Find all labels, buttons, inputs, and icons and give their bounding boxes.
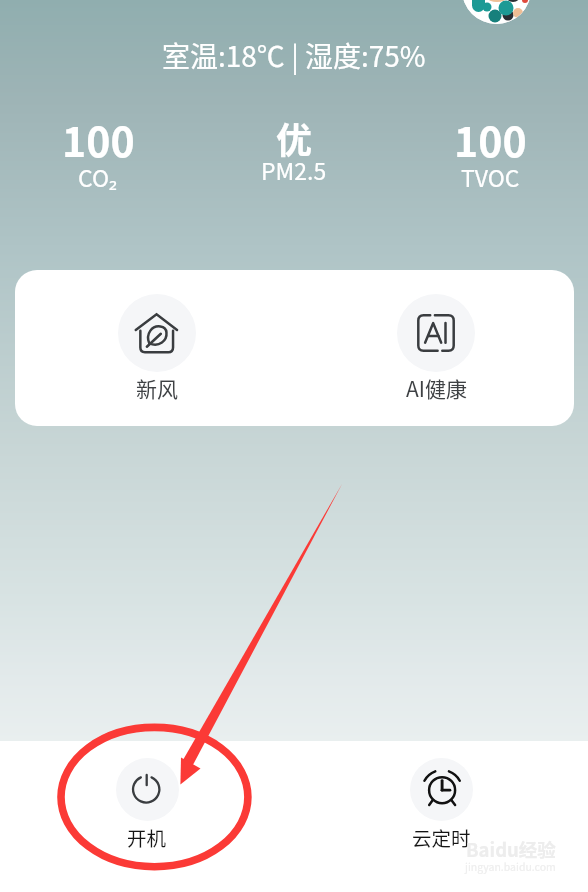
staticText: Baidu经验 xyxy=(466,836,556,863)
button[interactable]: Profile xyxy=(462,0,531,24)
staticText: TVOC xyxy=(461,160,520,193)
staticText: 开机 xyxy=(127,823,167,851)
staticText: jingyan.baidu.com xyxy=(465,859,556,874)
staticText: 100 xyxy=(454,109,527,168)
staticText: 100 xyxy=(62,109,135,168)
staticText: 优 xyxy=(276,112,313,164)
staticText: PM2.5 xyxy=(261,153,327,186)
staticText: 新风 xyxy=(136,373,178,403)
button[interactable]: 云定时 xyxy=(294,741,588,866)
button[interactable]: AI健康 xyxy=(294,270,574,426)
staticText: CO₂ xyxy=(78,160,118,193)
staticText: 室温:18℃ | 湿度:75% xyxy=(162,35,426,76)
staticText: 云定时 xyxy=(412,823,471,851)
button[interactable]: 新风 xyxy=(15,270,294,426)
button[interactable]: 开机 xyxy=(0,741,294,866)
staticText: AI健康 xyxy=(406,373,467,403)
